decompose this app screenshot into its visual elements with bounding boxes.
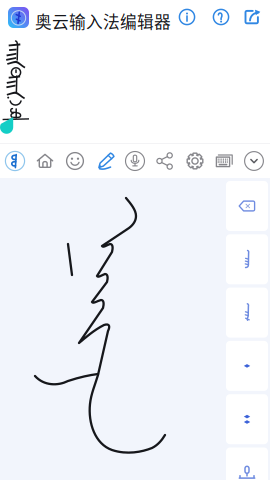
button[interactable]: Voice input	[226, 447, 268, 480]
button[interactable]: Emoji	[60, 146, 90, 176]
button[interactable]: Share	[242, 7, 261, 26]
button[interactable]: Information	[178, 8, 195, 25]
button[interactable]: Voice input	[120, 146, 150, 176]
staticText: 奥云输入法编辑器	[35, 9, 171, 33]
button[interactable]: Candidate 3	[226, 341, 268, 391]
button[interactable]: Candidate 1	[226, 234, 268, 284]
button[interactable]: Share	[150, 146, 180, 176]
button[interactable]: Mongolian keyboard	[0, 146, 30, 176]
button[interactable]: Keyboard	[209, 146, 239, 176]
button[interactable]: Candidate 4	[226, 394, 268, 444]
button[interactable]: Home	[30, 146, 60, 176]
button[interactable]: Collapse	[239, 146, 269, 176]
button[interactable]: Delete	[226, 181, 268, 231]
button[interactable]: Help	[212, 8, 229, 25]
button[interactable]: Handwriting	[92, 146, 122, 176]
button[interactable]: Settings	[180, 146, 210, 176]
button[interactable]: Candidate 2	[226, 288, 268, 338]
